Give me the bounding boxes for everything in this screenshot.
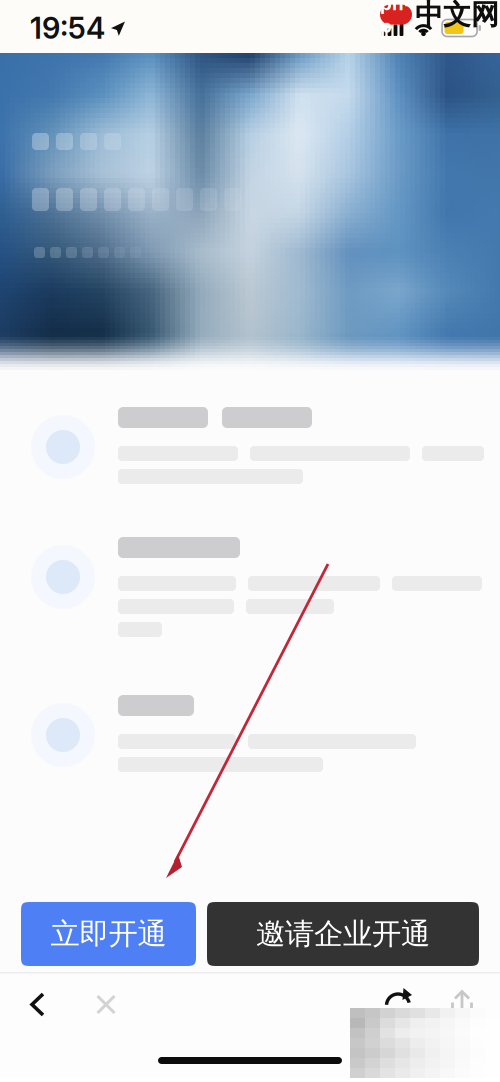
staticText: php [380,0,412,37]
button[interactable]: Share [440,982,484,1026]
staticText: 邀请企业开通 [256,915,430,952]
button[interactable]: 邀请企业开通 [207,902,479,966]
button[interactable]: Back [16,982,60,1026]
staticText: 19:54 [30,10,105,46]
staticText: 中文网 [415,0,499,32]
button[interactable]: Close [84,982,128,1026]
button[interactable]: Refresh [376,982,420,1026]
button[interactable]: 立即开通 [21,902,196,966]
staticText: 立即开通 [50,915,166,952]
